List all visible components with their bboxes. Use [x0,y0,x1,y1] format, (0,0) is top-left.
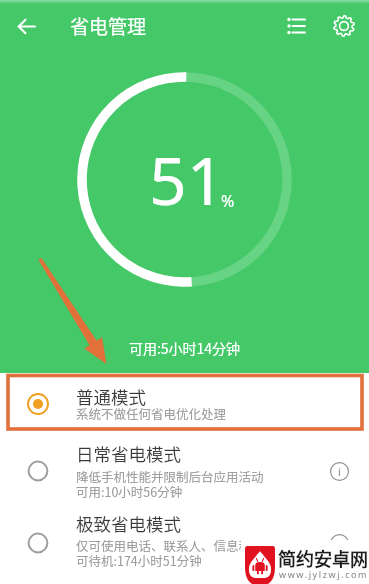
button[interactable]: Back [0,0,52,52]
staticText: 可用:10小时56分钟 [76,482,183,500]
staticText: 日常省电模式 [76,441,181,466]
button[interactable]: 日常省电模式 [0,433,369,505]
staticText: 51 [149,134,225,224]
staticText: 降低手机性能并限制后台应用活动 [76,467,264,485]
button[interactable]: Settings [321,3,367,49]
staticText: 省电管理 [70,12,147,40]
staticText: 仅可使用电话、联系人、信息和时钟 [76,536,277,554]
staticText: 可用:5小时14分钟 [0,338,369,358]
button[interactable]: More information [317,449,361,493]
staticText: www.jylzwj.com [279,568,369,580]
staticText: 普通模式 [76,384,146,409]
staticText: 系统不做任何省电优化处理 [76,404,227,422]
staticText: % [221,190,235,212]
staticText: i [338,536,341,551]
staticText: i [338,464,341,479]
button[interactable]: More information [317,521,361,565]
staticText: 极致省电模式 [76,511,181,536]
button[interactable]: 极致省电模式 [0,505,369,577]
button[interactable]: List view [273,3,319,49]
staticText: 可待机:174小时51分钟 [76,551,202,569]
button[interactable]: 普通模式 [0,373,369,433]
staticText: 简约安卓网 [278,545,368,571]
